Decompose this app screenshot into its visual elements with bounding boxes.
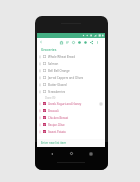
button[interactable]: Butter Glazed [37,81,105,88]
button[interactable]: Recipe Olive [37,121,105,128]
staticText: Strawberries [48,90,66,94]
button[interactable]: Broccoli [37,107,105,114]
staticText: Butter Glazed [48,83,67,87]
button[interactable]: Account [82,39,88,46]
button[interactable]: Sweet Potato [37,128,105,135]
staticText: Groceries [41,47,57,52]
staticText: Chicken Breast [48,116,69,120]
staticText: Done (5) [45,96,56,100]
button[interactable]: Bell Bell Orange [37,67,105,74]
button[interactable]: Strawberries [37,88,105,95]
staticText: Salmon [48,62,59,66]
staticText: Greek Yogurt and Honey [48,102,82,106]
staticText: Recipe Olive [48,123,65,127]
button[interactable]: Share [88,39,94,46]
staticText: Jarrod Cappers and Olives [48,76,84,80]
staticText: Broccoli [48,109,59,113]
button[interactable]: Back [48,150,55,157]
button[interactable]: Chicken Breast [37,114,105,121]
button[interactable]: Recents [87,150,94,157]
button[interactable]: Sort [64,39,70,46]
button[interactable]: Options [98,101,103,106]
button[interactable]: Enter new list item [37,139,105,147]
button[interactable]: Whole Wheat Bread [37,53,105,60]
button[interactable]: Back [38,39,44,45]
button[interactable]: Shop [58,39,64,46]
button[interactable]: More options [94,39,100,46]
button[interactable]: Jarrod Cappers and Olives [37,74,105,81]
button[interactable]: Greek Yogurt and Honey [37,100,105,107]
staticText: Enter new list item [41,141,67,145]
button[interactable]: Filter [76,39,82,46]
button[interactable]: Salmon [37,60,105,67]
button[interactable]: Home [68,150,75,157]
staticText: Sweet Potato [48,130,66,134]
button[interactable]: Edit [70,39,76,46]
staticText: Whole Wheat Bread [48,55,75,59]
staticText: Bell Bell Orange [48,69,70,73]
